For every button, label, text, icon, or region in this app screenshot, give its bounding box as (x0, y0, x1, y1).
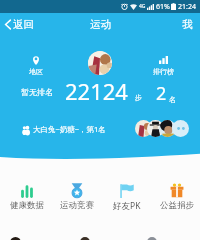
button[interactable]: 好友PK (102, 183, 152, 212)
other: Back (4, 19, 12, 30)
staticText: 排行榜 (153, 67, 174, 76)
staticText: 暂无排名 (21, 87, 53, 97)
button[interactable]: 排行榜 (149, 56, 178, 76)
button[interactable]: 公益捐步 (152, 183, 200, 211)
staticText: 运动竞赛 (60, 200, 94, 211)
button[interactable]: 健康数据 (2, 183, 52, 211)
staticText: 返回 (13, 18, 34, 31)
staticText: 步 (135, 93, 142, 102)
staticText: 21:24 (178, 2, 196, 12)
staticText: 好友PK (113, 200, 141, 212)
button[interactable]: Profile (88, 51, 112, 75)
button[interactable]: 我 (182, 18, 200, 31)
staticText: 地区 (29, 67, 43, 76)
staticText: 名 (169, 95, 176, 104)
staticText: 公益捐步 (160, 200, 194, 211)
button[interactable]: 运动竞赛 (52, 183, 102, 211)
staticText: 2 (156, 81, 167, 106)
staticText: 运动 (90, 18, 111, 31)
staticText: 大白兔~奶糖~，第1名 (33, 124, 106, 134)
staticText: 4G (139, 3, 146, 10)
button[interactable]: Back (0, 18, 34, 31)
staticText: 健康数据 (10, 200, 44, 211)
button[interactable]: 地区 (21, 56, 50, 76)
button[interactable]: 大白兔~奶糖~，第1名 (0, 120, 200, 138)
staticText: 61% (156, 2, 170, 12)
staticText: 22124 (65, 76, 128, 106)
